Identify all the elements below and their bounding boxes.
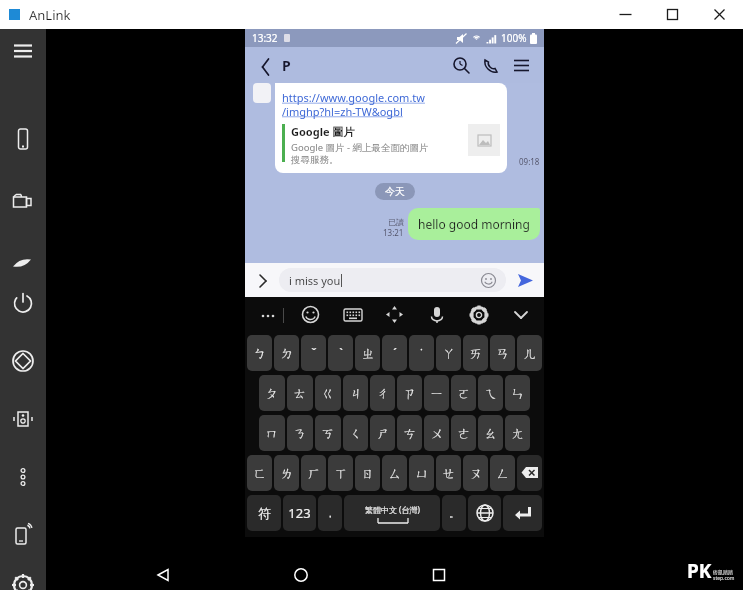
button[interactable]: Files (0, 181, 46, 221)
button[interactable]: ㄇ (259, 415, 285, 451)
button[interactable]: ㄖ (355, 455, 380, 491)
button[interactable]: ㄎ (315, 415, 341, 451)
staticText: ㄟ (484, 385, 498, 401)
button[interactable]: Expand (251, 268, 275, 292)
button[interactable]: ㄘ (397, 415, 422, 451)
button[interactable]: Call (476, 50, 506, 80)
button[interactable]: ㄡ (463, 455, 488, 491)
staticText: 已讀 (388, 217, 404, 227)
staticText: 繁體中文 (台灣) (365, 504, 420, 515)
button[interactable]: 123 (283, 495, 316, 531)
button[interactable]: ㄟ (478, 375, 503, 411)
button[interactable]: ， (318, 495, 342, 531)
button[interactable]: Tools (0, 243, 46, 283)
button[interactable]: Phone mirror (0, 119, 46, 159)
staticText: Google 圖片 (291, 124, 355, 139)
staticText: ㄙ (388, 465, 402, 481)
staticText: ㄈ (253, 465, 267, 481)
button[interactable]: Close (696, 0, 743, 29)
button[interactable]: ˊ (382, 335, 407, 371)
button[interactable]: ˙ (409, 335, 434, 371)
staticText: ㄋ (293, 425, 307, 441)
button[interactable]: Backspace (517, 455, 542, 491)
button[interactable]: ㄆ (259, 375, 285, 411)
staticText: ㄩ (415, 465, 429, 481)
button[interactable]: Switch language (468, 495, 501, 531)
button[interactable]: ˇ (301, 335, 326, 371)
button[interactable]: Menu (506, 50, 536, 80)
button[interactable]: Volume (0, 399, 46, 439)
button[interactable]: ㄅ (247, 335, 272, 371)
button[interactable]: ㄐ (343, 375, 368, 411)
button[interactable]: Recents (417, 560, 461, 590)
button[interactable]: Back (141, 560, 185, 590)
button[interactable]: Power (0, 283, 46, 323)
button[interactable]: Cast (0, 515, 46, 555)
button[interactable]: ㄞ (463, 335, 488, 371)
button[interactable]: ㄥ (490, 455, 515, 491)
button[interactable]: Emoji (296, 300, 326, 330)
staticText: ㄢ (496, 345, 510, 361)
button[interactable]: Send (512, 267, 538, 293)
button[interactable]: ㄤ (505, 415, 530, 451)
button[interactable]: ㄒ (328, 455, 353, 491)
button[interactable]: Voice input (422, 300, 452, 330)
staticText: ㄦ (523, 345, 537, 361)
staticText: 符 (258, 505, 271, 521)
button[interactable]: ˋ (328, 335, 353, 371)
staticText: ㄆ (265, 385, 279, 401)
staticText: AnLink (29, 6, 71, 24)
button[interactable]: 符 (247, 495, 281, 531)
button[interactable]: ㄊ (287, 375, 313, 411)
staticText: ㄑ (349, 425, 363, 441)
button[interactable]: Maximize (649, 0, 696, 29)
button[interactable]: ㄙ (382, 455, 407, 491)
button[interactable]: Move cursor (380, 300, 410, 330)
button[interactable]: ㄝ (436, 455, 461, 491)
staticText: step.com (713, 575, 735, 582)
button[interactable]: ㄧ (424, 375, 449, 411)
button[interactable]: ㄈ (247, 455, 272, 491)
button[interactable]: ㄍ (315, 375, 341, 411)
button[interactable]: ㄕ (370, 415, 395, 451)
button[interactable]: ㄔ (370, 375, 395, 411)
button[interactable]: ㄢ (490, 335, 515, 371)
button[interactable]: ㄩ (409, 455, 434, 491)
staticText: ㄕ (376, 425, 390, 441)
button[interactable]: ㄨ (424, 415, 449, 451)
button[interactable]: More options (253, 300, 283, 330)
button[interactable]: Search (446, 50, 476, 80)
button[interactable]: Home (279, 560, 323, 590)
button[interactable]: ㄓ (355, 335, 380, 371)
button[interactable]: ㄗ (397, 375, 422, 411)
button[interactable]: ㄑ (343, 415, 368, 451)
button[interactable]: Rotate screen (0, 341, 46, 381)
staticText: 13:21 (383, 227, 404, 238)
button[interactable]: ㄣ (505, 375, 530, 411)
button[interactable]: Keyboard layout (338, 300, 368, 330)
button[interactable]: Back (253, 52, 279, 78)
button[interactable]: ㄦ (517, 335, 542, 371)
button[interactable]: Keyboard settings (464, 300, 494, 330)
button[interactable]: Menu (0, 30, 46, 70)
button[interactable]: ㄏ (301, 455, 326, 491)
button[interactable]: ㄋ (287, 415, 313, 451)
button[interactable]: 繁體中文 (台灣) (344, 495, 440, 531)
staticText: ， (325, 507, 335, 520)
staticText: https://www.google.com.tw /imghp?hl=zh-T… (282, 90, 425, 119)
staticText: ㄛ (457, 385, 471, 401)
button[interactable]: More (0, 457, 46, 497)
button[interactable]: ㄠ (478, 415, 503, 451)
button[interactable]: 。 (442, 495, 466, 531)
staticText: ㄗ (403, 385, 417, 401)
button[interactable]: Hide keyboard (506, 300, 536, 330)
button[interactable]: i miss you (279, 268, 506, 292)
button[interactable]: ㄉ (274, 335, 299, 371)
button[interactable]: ㄛ (451, 375, 476, 411)
button[interactable]: ㄌ (274, 455, 299, 491)
button[interactable]: ㄜ (451, 415, 476, 451)
button[interactable]: ㄚ (436, 335, 461, 371)
button[interactable]: Settings (0, 573, 46, 590)
button[interactable]: Minimize (602, 0, 649, 29)
button[interactable]: Enter (503, 495, 542, 531)
